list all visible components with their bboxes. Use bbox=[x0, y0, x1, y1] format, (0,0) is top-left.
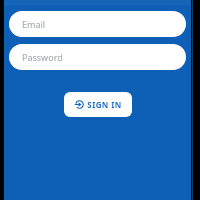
other: Sign in bbox=[75, 100, 84, 109]
staticText: SIGN IN bbox=[87, 99, 122, 110]
button[interactable]: Sign in bbox=[64, 92, 132, 117]
staticText: Email bbox=[22, 18, 46, 30]
staticText: Password bbox=[22, 51, 63, 63]
button[interactable]: Email bbox=[9, 11, 186, 37]
button[interactable]: Password bbox=[9, 44, 186, 70]
